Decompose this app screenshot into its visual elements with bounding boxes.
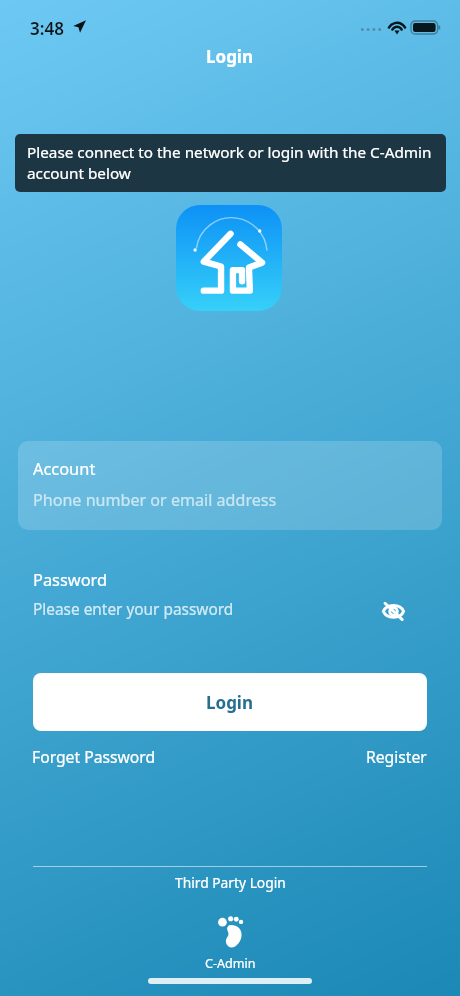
- staticText: Password: [33, 568, 108, 590]
- staticText: Please connect to the network or login w…: [27, 142, 434, 184]
- staticText: C-Admin: [205, 955, 256, 972]
- button[interactable]: Account: [18, 441, 442, 530]
- button[interactable]: Password: [18, 566, 442, 626]
- button[interactable]: Please connect to the network or login w…: [15, 134, 446, 192]
- staticText: Phone number or email address: [33, 489, 277, 511]
- button[interactable]: C-Admin: [205, 914, 256, 972]
- staticText: Login: [206, 691, 254, 714]
- staticText: Third Party Login: [175, 873, 286, 892]
- staticText: Forget Password: [32, 746, 156, 767]
- staticText: Register: [366, 746, 427, 767]
- staticText: Account: [33, 457, 96, 479]
- button[interactable]: Register: [366, 740, 427, 773]
- button[interactable]: Forget Password: [32, 740, 156, 773]
- staticText: Login: [206, 45, 254, 68]
- button[interactable]: Show password: [376, 594, 410, 626]
- staticText: Please enter your password: [33, 599, 234, 620]
- button[interactable]: Login: [33, 673, 427, 731]
- staticText: 3:48: [30, 17, 64, 40]
